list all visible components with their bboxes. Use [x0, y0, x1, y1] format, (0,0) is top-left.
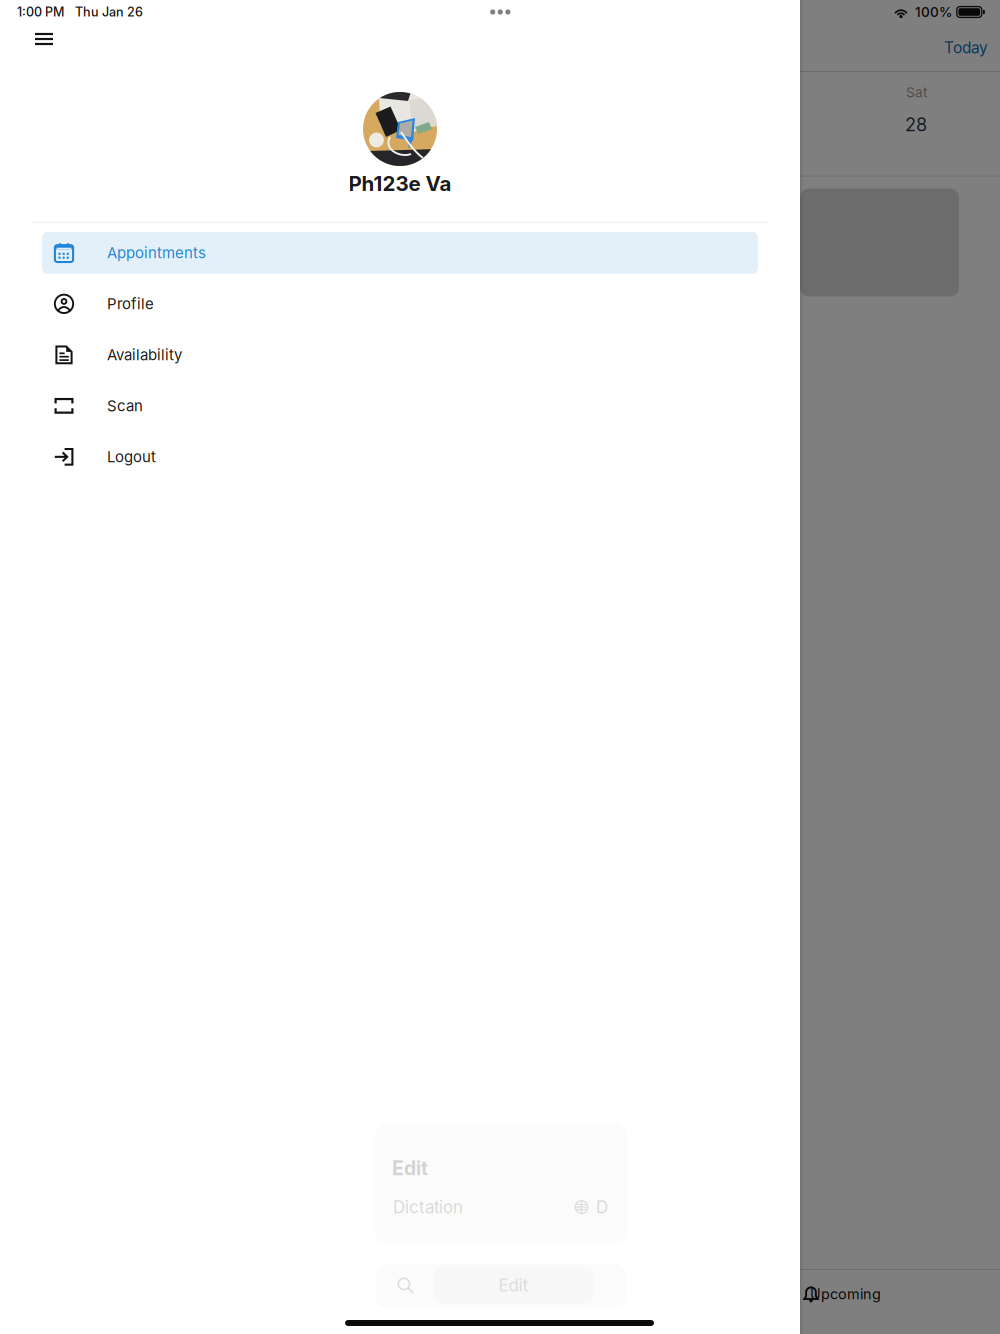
- staticText: Availability: [107, 346, 182, 364]
- staticText: 100%: [915, 4, 953, 20]
- staticText: Today: [944, 38, 988, 57]
- staticText: Thu Jan 26: [75, 4, 143, 20]
- button[interactable]: Appointments: [42, 232, 758, 274]
- staticText: Edit: [392, 1156, 428, 1180]
- staticText: Sat: [906, 84, 927, 101]
- staticText: Profile: [107, 295, 154, 313]
- button[interactable]: Today: [938, 38, 994, 57]
- button[interactable]: Scan: [42, 385, 758, 427]
- staticText: Edit: [498, 1275, 528, 1296]
- button[interactable]: Upcoming: [800, 1270, 1000, 1318]
- staticText: 28: [905, 114, 927, 135]
- button[interactable]: Availability: [42, 334, 758, 376]
- staticText: D: [596, 1197, 608, 1217]
- staticText: Scan: [107, 397, 143, 415]
- staticText: Logout: [107, 448, 156, 466]
- staticText: 1:00 PM: [17, 4, 64, 20]
- staticText: Dictation: [393, 1197, 463, 1217]
- button[interactable]: Multitasking controls: [483, 0, 517, 24]
- button[interactable]: Profile: [42, 283, 758, 325]
- staticText: Upcoming: [810, 1285, 881, 1303]
- button[interactable]: Logout: [42, 436, 758, 478]
- button[interactable]: Menu: [27, 24, 61, 54]
- staticText: Ph123e Va: [348, 171, 451, 196]
- staticText: Appointments: [107, 244, 206, 262]
